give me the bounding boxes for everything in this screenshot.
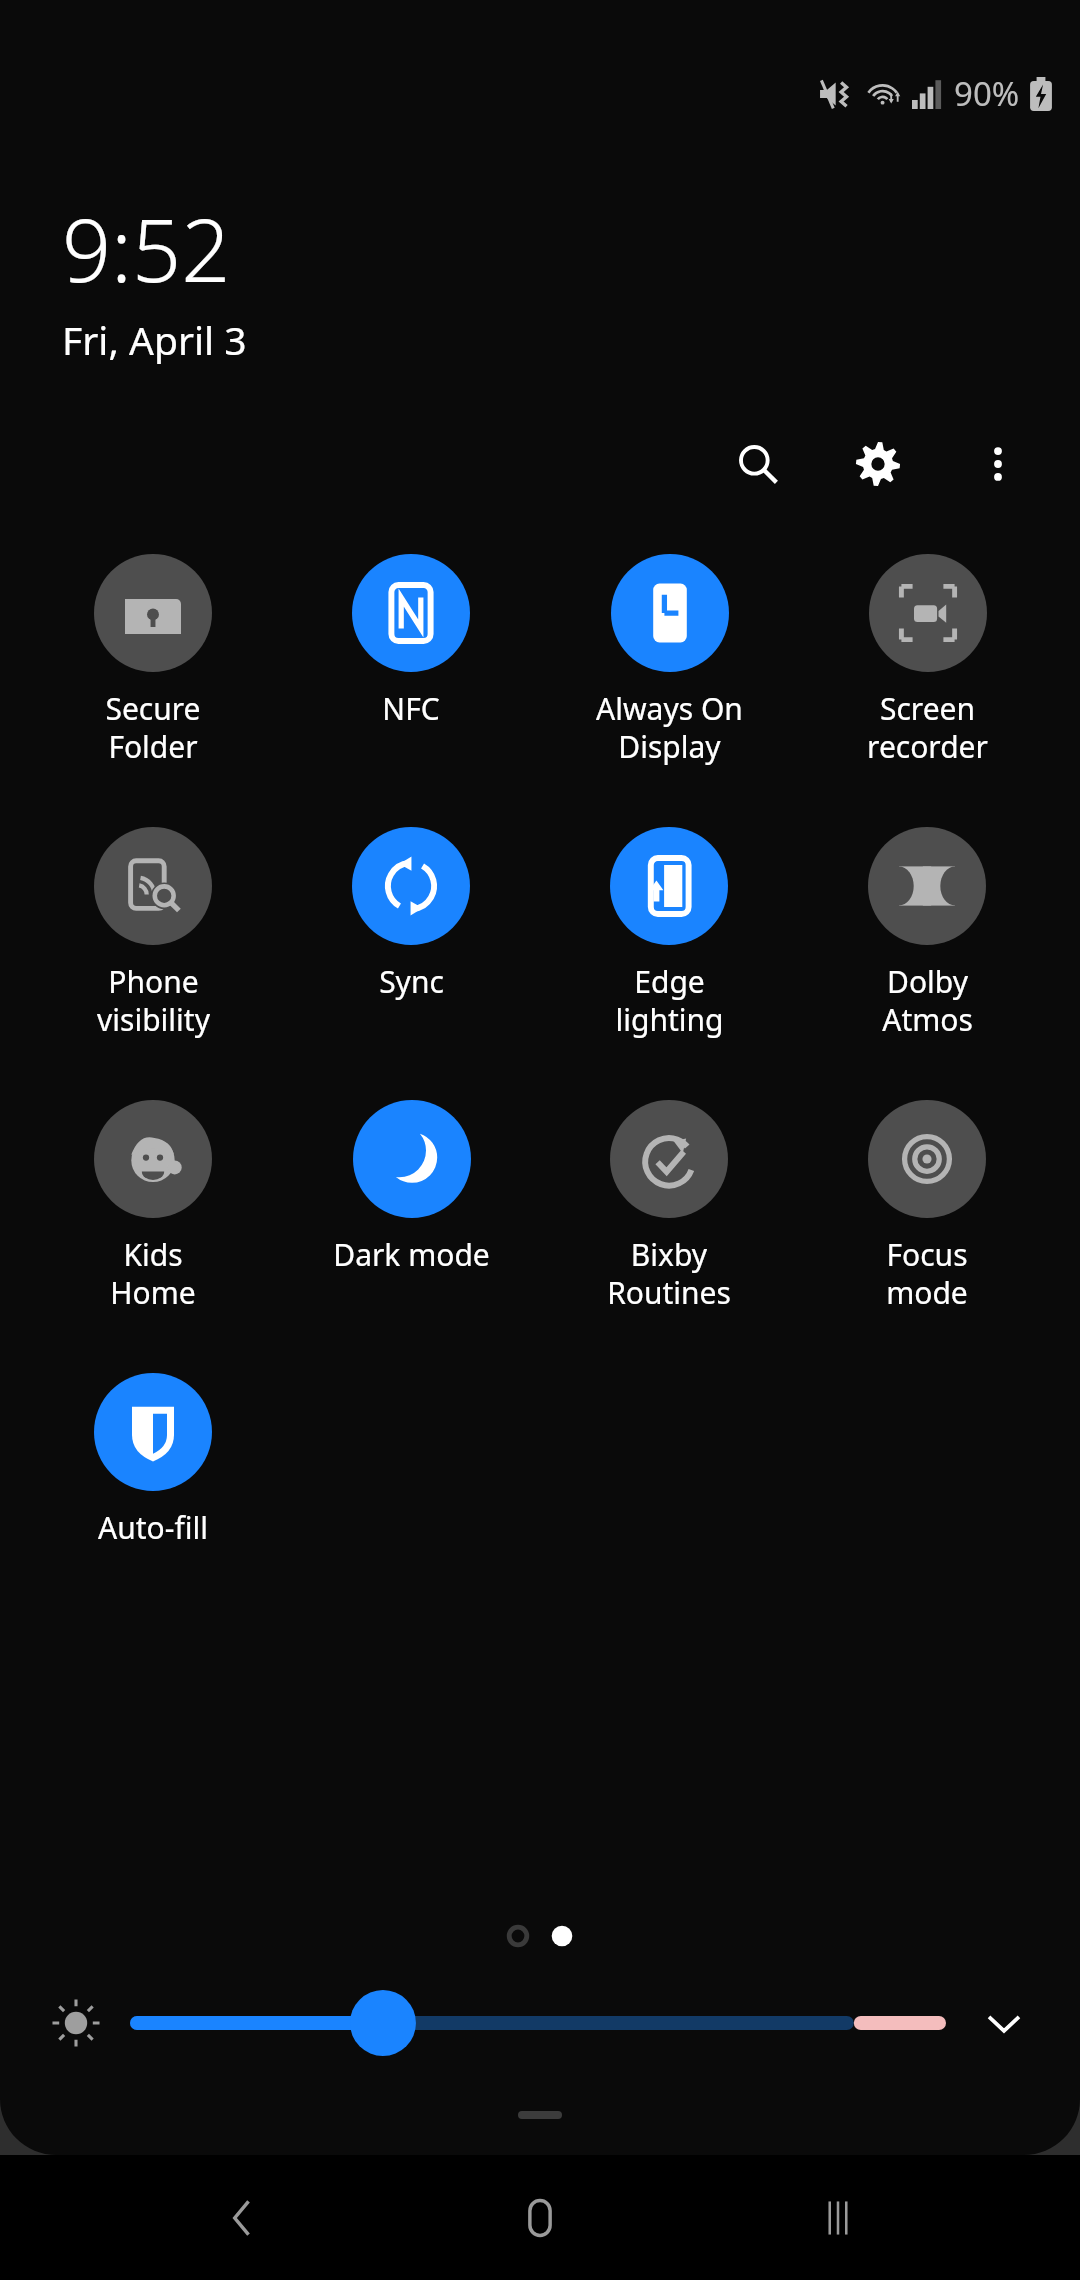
button[interactable]: Settings: [840, 426, 916, 502]
staticText: 9:52: [62, 190, 231, 307]
staticText: Dolby Atmos: [882, 961, 973, 1040]
staticText: Focus mode: [886, 1234, 968, 1313]
button[interactable]: Focus mode: [868, 1096, 986, 1317]
button[interactable]: Edge lighting: [610, 823, 728, 1044]
button[interactable]: Search: [720, 426, 796, 502]
button[interactable]: Back: [188, 2163, 298, 2273]
staticText: NFC: [382, 688, 440, 729]
button[interactable]: NFC: [352, 550, 470, 733]
staticText: 90%: [954, 71, 1020, 116]
staticText: Edge lighting: [615, 961, 724, 1040]
button[interactable]: Sync: [352, 823, 470, 1006]
staticText: Kids Home: [110, 1234, 196, 1313]
button[interactable]: Brightness: [34, 1981, 118, 2065]
staticText: Dark mode: [333, 1234, 490, 1275]
button[interactable]: Expand brightness settings: [962, 1981, 1046, 2065]
button[interactable]: Recent apps: [783, 2163, 893, 2273]
button[interactable]: Auto-fill: [94, 1369, 212, 1552]
staticText: Auto-fill: [98, 1507, 208, 1548]
button[interactable]: [130, 1988, 946, 2058]
button[interactable]: Screen recorder: [867, 550, 988, 771]
staticText: Secure Folder: [105, 688, 201, 767]
button[interactable]: Collapse panel: [518, 2111, 562, 2119]
button[interactable]: Bixby Routines: [607, 1096, 731, 1317]
staticText: Phone visibility: [97, 961, 210, 1040]
staticText: Screen recorder: [867, 688, 988, 767]
button[interactable]: Kids Home: [94, 1096, 212, 1317]
button[interactable]: Phone visibility: [94, 823, 212, 1044]
staticText: Always On Display: [596, 688, 743, 767]
button[interactable]: More options: [960, 426, 1036, 502]
staticText: Sync: [379, 961, 444, 1002]
button[interactable]: Dolby Atmos: [868, 823, 986, 1044]
button[interactable]: Dark mode: [333, 1096, 490, 1279]
staticText: Bixby Routines: [607, 1234, 731, 1313]
staticText: Fri, April 3: [62, 313, 247, 366]
button[interactable]: Home: [485, 2163, 595, 2273]
button[interactable]: Secure Folder: [94, 550, 212, 771]
button[interactable]: Always On Display: [596, 550, 743, 771]
